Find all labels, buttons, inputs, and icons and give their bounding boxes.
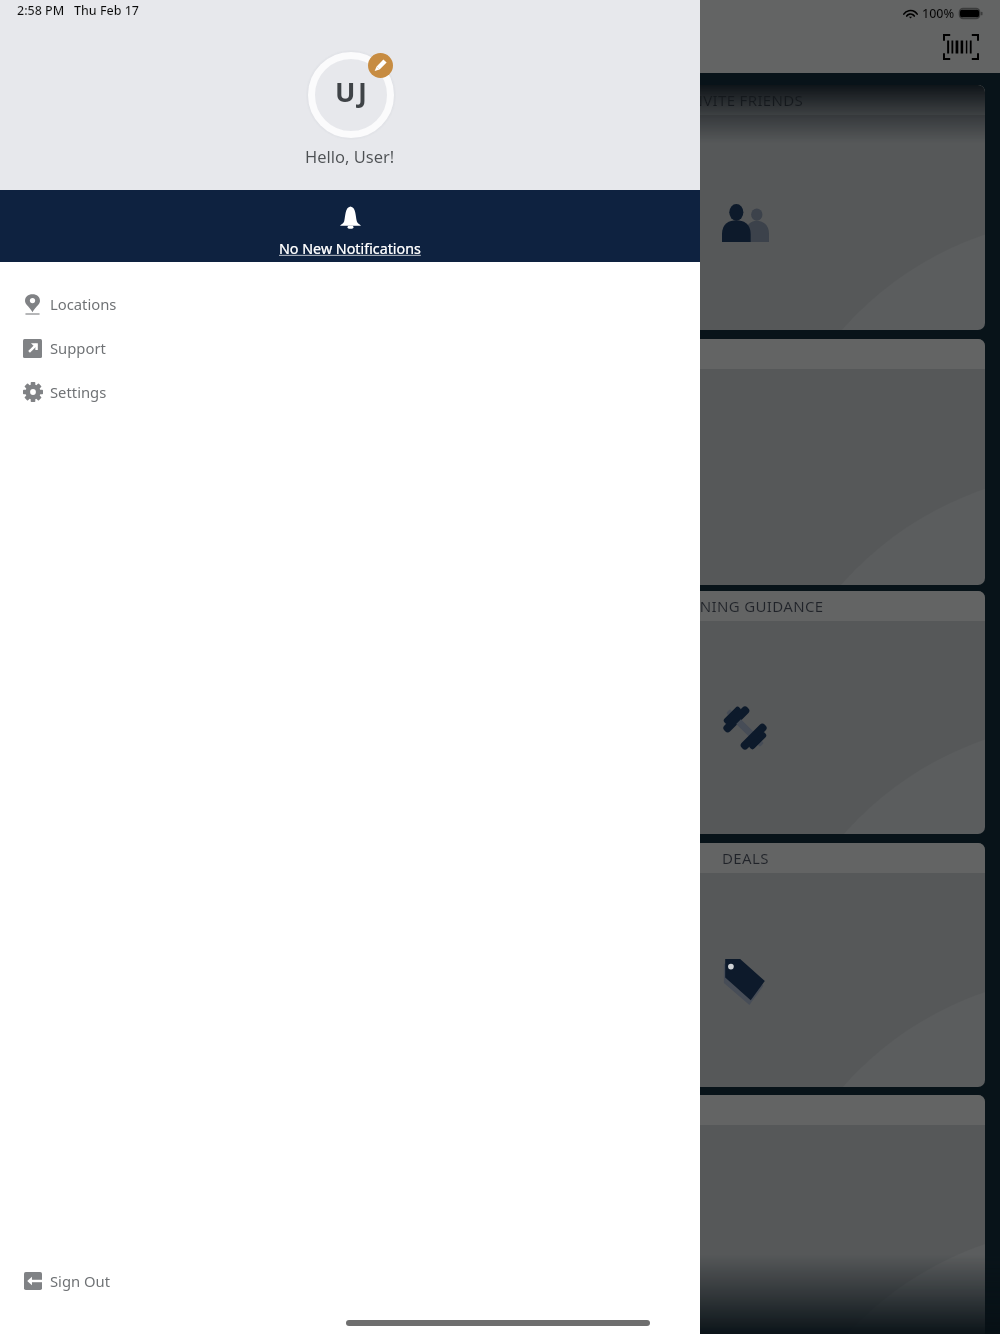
button[interactable]: Sign Out (0, 1259, 700, 1303)
button[interactable]: INVITE FRIENDS (505, 85, 985, 330)
button[interactable]: Locations (0, 282, 700, 326)
staticText: Support (50, 338, 106, 358)
button[interactable] (505, 1095, 985, 1334)
button[interactable]: TRAINING GUIDANCE (505, 591, 985, 834)
staticText: Settings (50, 382, 107, 402)
button[interactable]: DEALS (505, 843, 985, 1087)
button[interactable]: Settings (0, 370, 700, 414)
button[interactable]: UJ (308, 52, 394, 138)
staticText: INVITE FRIENDS (686, 90, 804, 110)
button[interactable] (505, 339, 985, 585)
staticText: Sign Out (50, 1271, 111, 1291)
staticText: DEALS (722, 848, 769, 868)
button[interactable]: Scan barcode (943, 34, 979, 60)
staticText: 100% (922, 5, 955, 22)
button[interactable]: Support (0, 326, 700, 370)
staticText: UJ (335, 73, 370, 110)
staticText: 2:58 PM Thu Feb 17 (17, 2, 139, 19)
staticText: No New Notifications (279, 239, 421, 258)
button[interactable]: No New Notifications (0, 190, 700, 262)
staticText: Hello, User! (305, 145, 395, 167)
staticText: Locations (50, 294, 117, 314)
button[interactable]: Edit profile (368, 53, 393, 78)
staticText: TRAINING GUIDANCE (666, 596, 824, 616)
